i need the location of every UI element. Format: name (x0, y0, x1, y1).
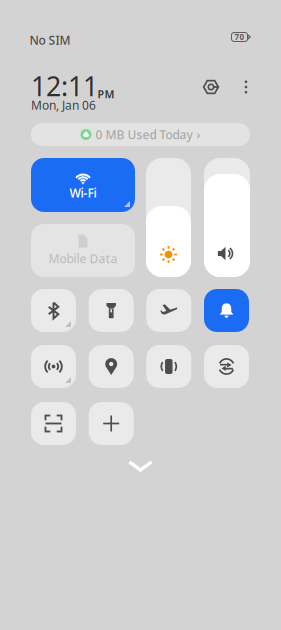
staticText: Mobile Data (48, 250, 117, 266)
staticText: 12:11 (31, 68, 98, 104)
button[interactable]: Volume (204, 158, 250, 277)
button[interactable]: Settings (198, 74, 224, 100)
button[interactable]: More options (236, 74, 256, 100)
button[interactable]: Add tile (89, 402, 134, 445)
button[interactable]: Collapse (122, 456, 158, 476)
button[interactable]: Airplane mode (146, 289, 191, 332)
button[interactable]: Wi-Fi (31, 158, 135, 212)
staticText: Wi-Fi (69, 185, 96, 201)
button[interactable]: Scan QR code (31, 402, 76, 445)
button[interactable]: 0 MB Used Today (31, 123, 250, 146)
staticText: 70 (234, 32, 244, 42)
button[interactable]: Auto rotate (146, 345, 191, 388)
staticText: 0 MB Used Today (95, 126, 192, 142)
staticText: PM (97, 87, 114, 101)
staticText: › (196, 126, 200, 142)
button[interactable]: Brightness (146, 158, 191, 277)
button[interactable]: Bluetooth (31, 289, 76, 332)
button[interactable]: Sync (204, 345, 249, 388)
button[interactable]: Location (89, 345, 134, 388)
button[interactable]: Hotspot (31, 345, 76, 388)
button[interactable]: Ringer (204, 289, 249, 332)
staticText: No SIM (29, 32, 70, 48)
button[interactable]: Flashlight (89, 289, 134, 332)
button[interactable]: Mobile Data (31, 224, 135, 277)
staticText: Mon, Jan 06 (31, 97, 96, 113)
